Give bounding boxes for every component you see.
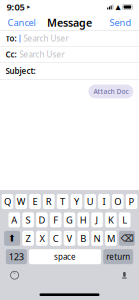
button[interactable]: Q [2,194,13,209]
staticText: space [54,251,76,262]
button[interactable]: D [36,212,48,227]
staticText: C [53,232,59,244]
button[interactable]: J [91,212,103,227]
staticText: Y [74,195,79,208]
button[interactable]: Emoji [7,268,23,282]
staticText: Search User [20,49,65,60]
button[interactable]: Z [22,231,34,246]
staticText: Cc: [6,49,17,60]
staticText: ˘ [13,271,16,280]
button[interactable]: C [50,231,61,246]
button[interactable]: T [57,194,68,209]
staticText: R [46,195,52,208]
staticText: B [80,232,86,244]
button[interactable]: Y [71,194,82,209]
button[interactable]: Attach Doc [88,84,133,98]
staticText: To: [6,33,17,44]
staticText: J [96,214,99,226]
button[interactable]: E [29,194,41,209]
button[interactable]: P [126,194,137,209]
button[interactable]: A [8,212,20,227]
button[interactable]: K [105,212,117,227]
button[interactable]: O [112,194,124,209]
staticText: F [53,214,58,226]
button[interactable]: Return [103,249,133,264]
staticText: Send [109,16,131,29]
button[interactable]: G [64,212,75,227]
button[interactable]: U [84,194,96,209]
button[interactable]: S [22,212,34,227]
staticText: A [11,214,17,226]
staticText: U [87,195,94,208]
button[interactable]: I [98,194,110,209]
button[interactable]: F [50,212,61,227]
staticText: ▲ [115,3,120,11]
button[interactable]: N [91,231,103,246]
staticText: S [26,214,31,226]
staticText: N [94,232,101,244]
button[interactable]: Send [104,13,136,32]
staticText: 123 [9,250,24,263]
staticText: ⬆ [8,233,16,244]
staticText: Message [47,15,92,30]
staticText: I [102,195,105,208]
button[interactable]: Delete [119,231,135,246]
staticText: 9:05 [7,1,25,13]
button[interactable]: Shift [4,231,20,246]
button[interactable]: W [15,194,27,209]
staticText: Attach Doc [93,87,128,96]
button[interactable]: B [77,231,89,246]
button[interactable]: R [43,194,55,209]
staticText: return [106,251,130,262]
button[interactable]: Cancel [3,13,41,32]
staticText: P [129,195,135,208]
staticText: H [80,214,87,226]
button[interactable]: space [29,249,101,264]
staticText: Subject: [6,66,36,76]
staticText: X [39,232,44,244]
staticText: ⌫ [120,233,133,244]
staticText: L [122,214,127,226]
staticText: K [108,214,114,226]
staticText: D [38,214,45,226]
staticText: Search User [23,33,68,44]
button[interactable]: H [77,212,89,227]
button[interactable]: Dictation [116,268,132,282]
button[interactable]: V [64,231,75,246]
staticText: W [17,195,26,208]
staticText: T [60,195,65,208]
button[interactable]: X [36,231,48,246]
staticText: M [107,232,115,244]
staticText: Q [4,195,11,208]
staticText: G [66,214,73,226]
staticText: Z [26,232,31,244]
staticText: ➤ [26,4,30,10]
staticText: O [114,195,121,208]
button[interactable]: Numbers [6,249,27,264]
staticText: E [32,195,37,208]
button[interactable]: L [119,212,130,227]
staticText: V [66,232,72,244]
button[interactable]: M [105,231,117,246]
staticText: Cancel [8,16,36,29]
